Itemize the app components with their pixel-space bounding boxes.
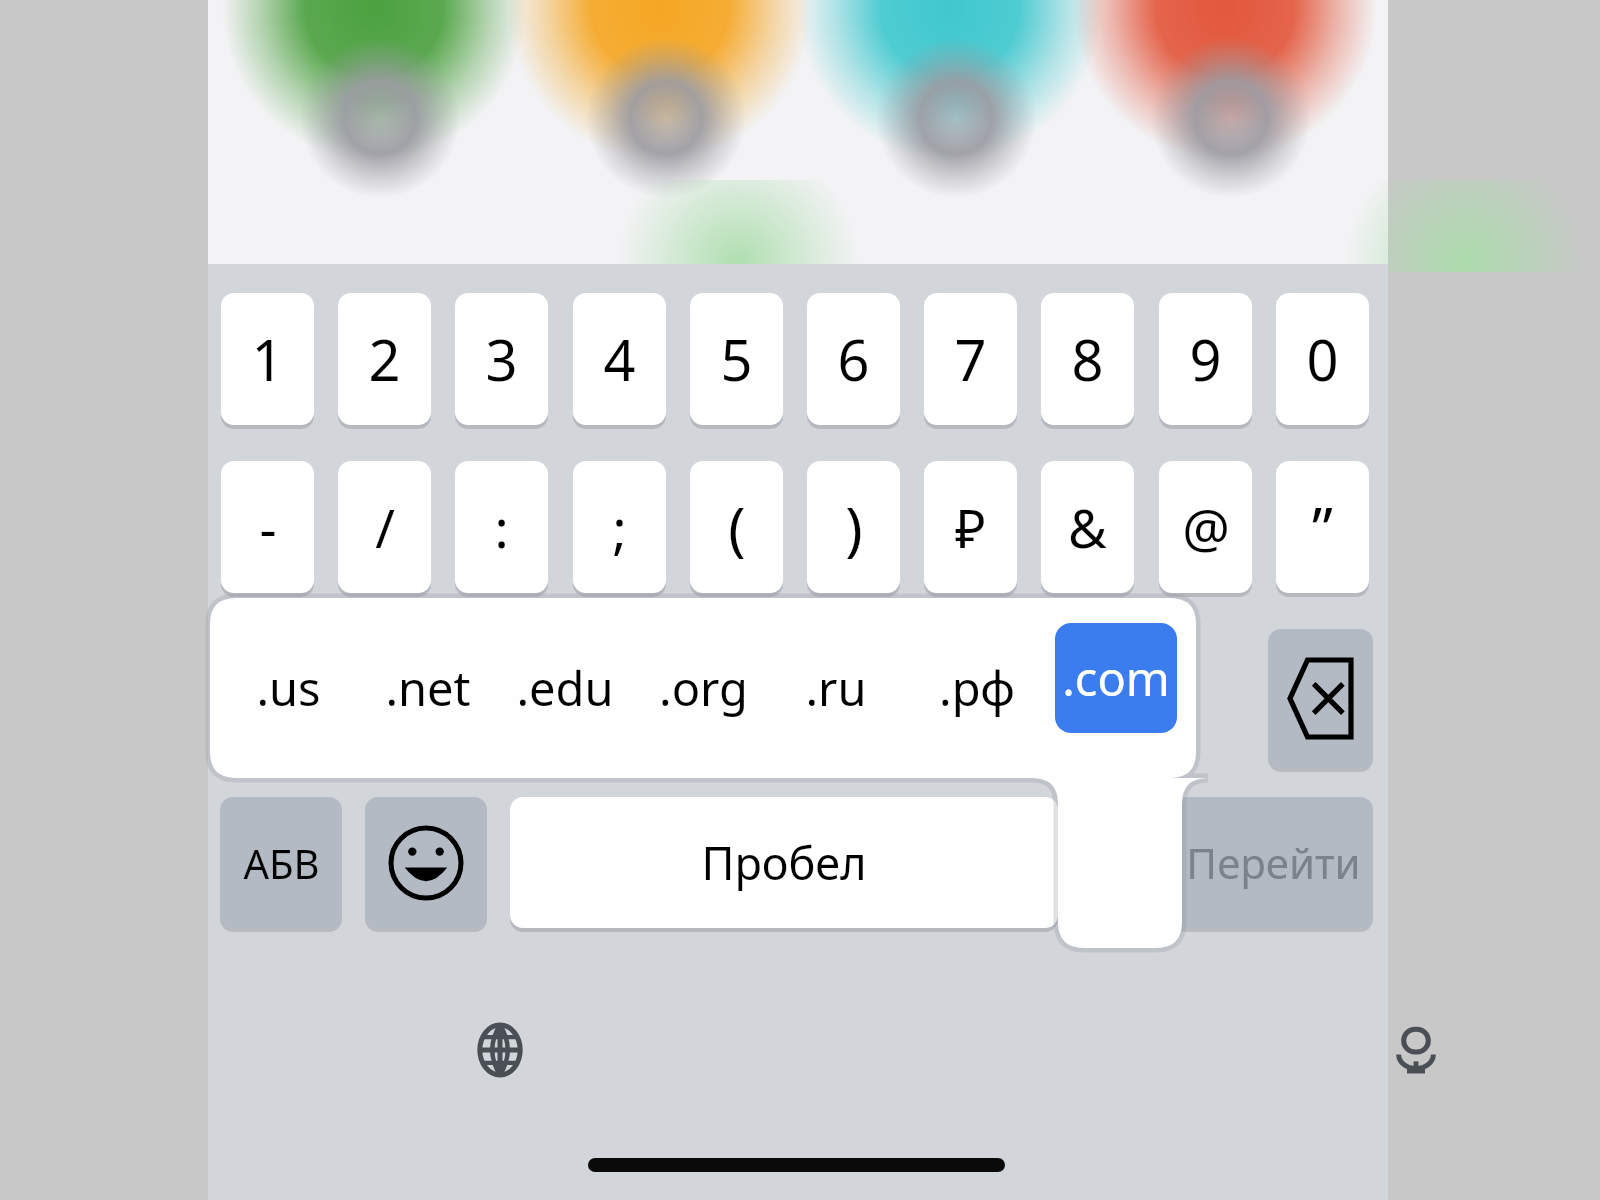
staticText: 4 — [603, 321, 636, 397]
staticText: ; — [612, 491, 627, 563]
button[interactable]: ( — [690, 461, 783, 598]
button[interactable]: ” — [1276, 461, 1369, 598]
button[interactable]: .com — [1055, 623, 1177, 733]
staticText: ) — [845, 488, 863, 567]
button[interactable]: ; — [573, 461, 666, 598]
staticText: & — [1068, 491, 1107, 563]
button[interactable]: 8 — [1041, 293, 1134, 430]
button[interactable]: Перейти — [1174, 797, 1373, 933]
staticText: @ — [1182, 491, 1230, 563]
staticText: 6 — [837, 321, 870, 397]
staticText: ( — [728, 488, 746, 567]
staticText: .рф — [939, 656, 1015, 720]
staticText: 1 — [251, 321, 284, 397]
staticText: ” — [1312, 488, 1333, 567]
staticText: 8 — [1071, 321, 1104, 397]
button[interactable]: 1 — [221, 293, 314, 430]
button[interactable]: & — [1041, 461, 1134, 598]
button[interactable]: 9 — [1159, 293, 1252, 430]
button[interactable]: .рф — [912, 624, 1042, 752]
button[interactable]: .us — [223, 624, 353, 752]
button[interactable]: Emoji keyboard — [365, 797, 487, 933]
staticText: Перейти — [1186, 834, 1361, 891]
button[interactable]: .net — [363, 624, 493, 752]
button[interactable]: Пробел — [510, 797, 1058, 933]
staticText: Пробел — [701, 832, 867, 893]
staticText: .us — [256, 656, 321, 720]
staticText: .ru — [805, 656, 867, 720]
staticText: .org — [659, 656, 748, 720]
button[interactable]: - — [221, 461, 314, 598]
staticText: 3 — [485, 321, 518, 397]
button[interactable]: ) — [807, 461, 900, 598]
button[interactable]: АБВ — [220, 797, 342, 933]
staticText: 7 — [954, 321, 987, 397]
button[interactable]: 4 — [573, 293, 666, 430]
button[interactable]: 7 — [924, 293, 1017, 430]
button[interactable]: .org — [638, 624, 768, 752]
staticText: ₽ — [955, 491, 986, 563]
button[interactable]: 2 — [338, 293, 431, 430]
button[interactable]: 3 — [455, 293, 548, 430]
button[interactable]: ₽ — [924, 461, 1017, 598]
button[interactable]: .edu — [500, 624, 630, 752]
button[interactable]: 0 — [1276, 293, 1369, 430]
staticText: АБВ — [243, 836, 320, 890]
button[interactable]: / — [338, 461, 431, 598]
staticText: 9 — [1189, 321, 1222, 397]
button[interactable]: @ — [1159, 461, 1252, 598]
staticText: .net — [385, 656, 471, 720]
staticText: - — [259, 491, 277, 563]
button[interactable]: 5 — [690, 293, 783, 430]
staticText: 5 — [720, 321, 753, 397]
button[interactable]: 6 — [807, 293, 900, 430]
staticText: : — [494, 491, 509, 563]
staticText: 2 — [368, 321, 401, 397]
staticText: / — [375, 491, 395, 563]
button[interactable]: : — [455, 461, 548, 598]
button[interactable]: Backspace — [1268, 629, 1373, 773]
button[interactable]: .ru — [771, 624, 901, 752]
button[interactable]: Switch keyboard language — [455, 1005, 545, 1095]
button[interactable]: Dictation — [1371, 1005, 1461, 1095]
staticText: 0 — [1306, 321, 1339, 397]
staticText: .edu — [516, 656, 614, 720]
staticText: .com — [1062, 646, 1170, 710]
